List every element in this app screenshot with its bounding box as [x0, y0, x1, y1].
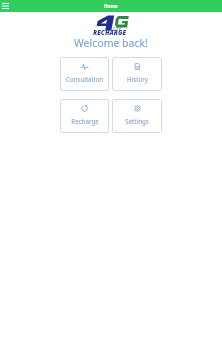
staticText: Settings: [125, 117, 149, 125]
button[interactable]: Recharge: [60, 99, 109, 133]
staticText: History: [127, 75, 148, 83]
button[interactable]: Open navigation menu: [0, 0, 11, 11]
staticText: Welcome back!: [0, 36, 222, 50]
staticText: Consultation: [66, 75, 103, 83]
button[interactable]: History: [112, 57, 162, 91]
staticText: LTE: [113, 26, 122, 32]
button[interactable]: Settings: [112, 99, 162, 133]
staticText: Home: [104, 3, 118, 9]
staticText: RECHARGE: [93, 28, 127, 37]
staticText: Recharge: [71, 117, 99, 125]
button[interactable]: Consultation: [60, 57, 109, 91]
